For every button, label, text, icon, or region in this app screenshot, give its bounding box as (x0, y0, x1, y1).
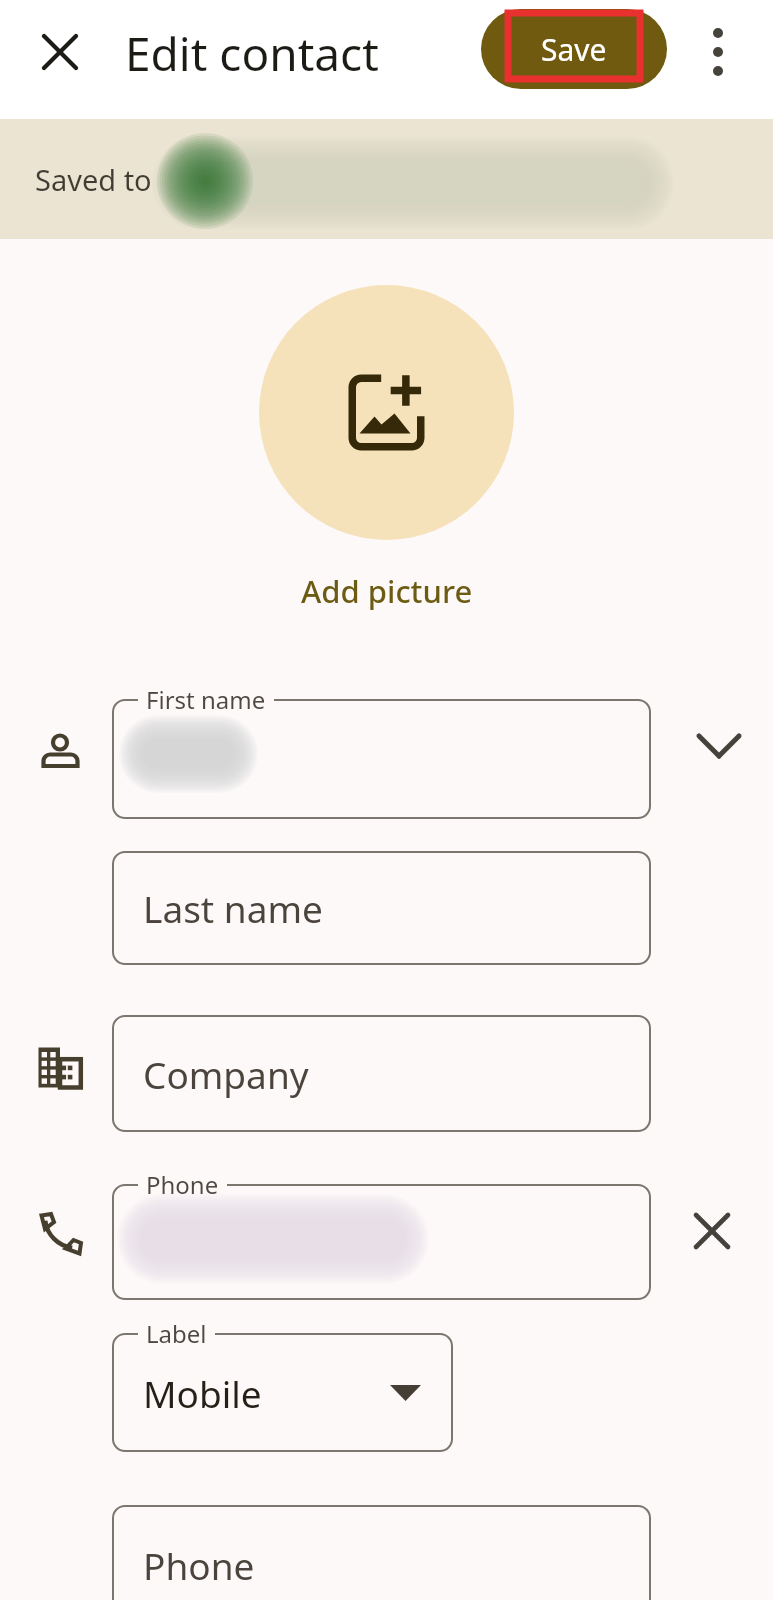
button[interactable] (688, 1207, 736, 1255)
button[interactable] (695, 721, 743, 769)
button[interactable]: Phone (112, 1505, 651, 1600)
button[interactable] (36, 28, 84, 76)
staticText: Save (541, 29, 607, 70)
staticText: Company (143, 1049, 309, 1099)
staticText: Saved to (35, 160, 152, 199)
button[interactable] (112, 1184, 651, 1300)
staticText: Add picture (301, 570, 473, 612)
button[interactable] (694, 28, 742, 76)
button[interactable]: Save (481, 9, 667, 89)
button[interactable]: Last name (112, 851, 651, 965)
staticText: Last name (143, 883, 323, 933)
button[interactable]: Mobile (112, 1333, 453, 1452)
staticText: Edit contact (125, 22, 379, 85)
button[interactable]: Add picture (237, 558, 537, 624)
staticText: First name (146, 683, 266, 716)
button[interactable]: Company (112, 1015, 651, 1132)
staticText: Mobile (143, 1368, 262, 1418)
staticText: Label (146, 1317, 207, 1350)
button[interactable] (259, 285, 514, 540)
staticText: Phone (146, 1168, 219, 1201)
staticText: Phone (143, 1540, 255, 1590)
button[interactable] (112, 699, 651, 819)
